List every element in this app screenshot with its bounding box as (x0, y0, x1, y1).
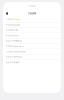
staticText: 待放款 (14, 18, 20, 21)
staticText: 审核中 (14, 61, 20, 63)
staticText: 放款进度 (6, 61, 14, 63)
button[interactable]: 放款进度 (3, 60, 61, 65)
staticText: 申请期限 (6, 29, 14, 31)
staticText: 申请时间 (6, 45, 14, 47)
staticText: 12期 (14, 29, 18, 31)
staticText: 等额本息 (14, 40, 22, 42)
staticText: 收款账户 (6, 56, 14, 58)
button[interactable]: 还款方式 (3, 38, 61, 43)
button[interactable]: Back (5, 11, 9, 15)
staticText: 2023-05-12 (14, 45, 24, 47)
button[interactable]: 收款账户 (3, 54, 61, 59)
button[interactable]: 订单编号 (3, 49, 61, 54)
staticText: 订单状态 (6, 18, 14, 21)
staticText: 申请金额 (6, 24, 14, 26)
staticText: 202305120081 (14, 50, 26, 53)
staticText: 订单编号 (6, 50, 14, 53)
button[interactable]: 申请金额 (3, 22, 61, 27)
staticText: 还款方式 (6, 40, 14, 42)
button[interactable]: 申请期限 (3, 28, 61, 33)
staticText: 7.20% (14, 34, 18, 37)
staticText: 尾号6688 (14, 56, 22, 58)
button[interactable]: 年化利率 (3, 33, 61, 38)
staticText: 产品详情 (28, 12, 36, 15)
button[interactable]: 订单状态 (3, 17, 61, 22)
staticText: 5,000.00 (14, 24, 20, 26)
staticText: 年化利率 (6, 34, 14, 37)
button[interactable]: 申请时间 (3, 44, 61, 49)
